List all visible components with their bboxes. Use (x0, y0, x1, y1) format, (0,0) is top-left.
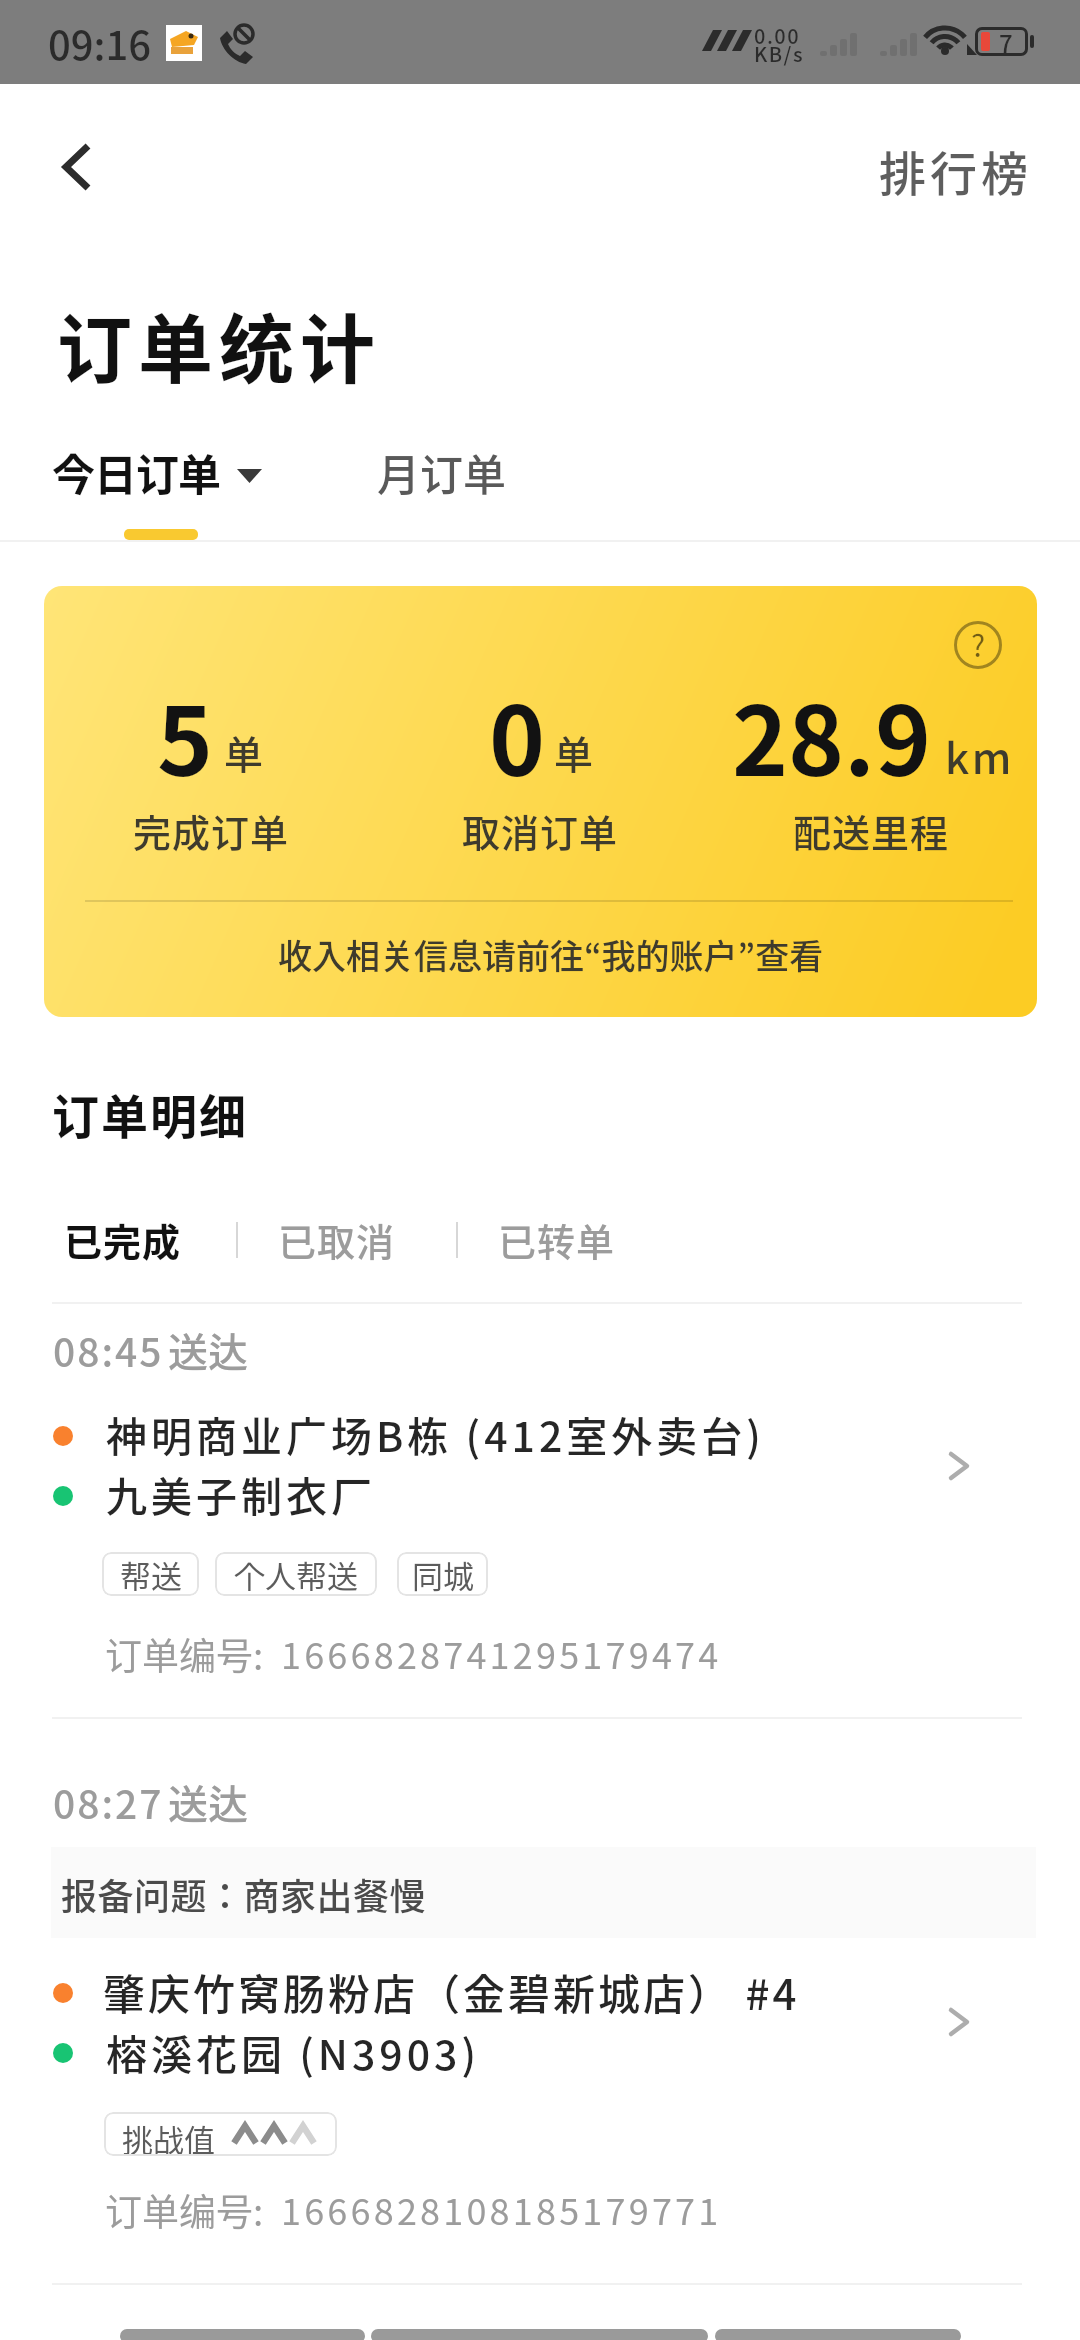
button[interactable]: 月订单 (355, 430, 528, 514)
button[interactable]: 已转单 (476, 1196, 638, 1282)
staticText: 榕溪花园 (N3903) (106, 2022, 480, 2081)
staticText: KB/s (754, 39, 805, 68)
staticText: 收入相关信息请前往“我的账户”查看 (278, 930, 824, 979)
staticText: 排行榜 (879, 136, 1032, 204)
button[interactable] (0, 1303, 1080, 1716)
button[interactable]: 今日订单 (32, 430, 282, 514)
button[interactable]: Back (24, 117, 124, 217)
button[interactable]: 排行榜 (854, 125, 1032, 215)
staticText: 0.00 (754, 21, 801, 50)
staticText: ? (971, 622, 986, 665)
staticText: 今日订单 (52, 441, 220, 503)
staticText: 28.9 (732, 666, 932, 804)
staticText: 肇庆竹窝肠粉店（金碧新城店） #4 (103, 1961, 800, 2022)
staticText: 订单明细 (52, 1079, 248, 1147)
staticText: 神明商业广场B栋 (412室外卖台) (106, 1404, 765, 1463)
staticText: 九美子制衣厂 (106, 1464, 376, 1523)
staticText: 配送里程 (793, 803, 950, 858)
staticText: 报备问题：商家出餐慢 (61, 1868, 427, 1920)
staticText: 送达 (168, 1773, 248, 1831)
button[interactable]: Help (44, 586, 1037, 1017)
staticText: 09:16 (48, 14, 152, 72)
staticText: 08:27 (53, 1774, 164, 1830)
button[interactable] (0, 1718, 1080, 2283)
button[interactable]: 帮送 (102, 1552, 199, 1596)
staticText: 已取消 (278, 1212, 396, 1267)
staticText: 订单编号: (105, 2183, 264, 2237)
staticText: 帮送 (120, 1552, 182, 1596)
staticText: 5 (157, 666, 214, 804)
button[interactable]: 个人帮送 (215, 1552, 377, 1596)
staticText: 1666828108185179771 (281, 2183, 722, 2235)
button[interactable]: 挑战值 (104, 2112, 337, 2156)
staticText: 送达 (168, 1321, 248, 1379)
staticText: 订单统计 (57, 290, 382, 399)
staticText: 已转单 (498, 1212, 616, 1267)
staticText: 单 (224, 724, 265, 780)
staticText: 个人帮送 (234, 1552, 358, 1596)
staticText: 完成订单 (133, 803, 290, 858)
button[interactable]: Help (945, 612, 1011, 678)
staticText: 订单编号: (105, 1627, 264, 1681)
staticText: 0 (489, 666, 546, 804)
staticText: 取消订单 (462, 803, 619, 858)
staticText: 月订单 (377, 441, 506, 503)
staticText: 挑战值 (122, 2116, 215, 2156)
staticText: 08:45 (53, 1322, 164, 1378)
staticText: 7 (999, 25, 1013, 60)
staticText: 1666828741295179474 (281, 1627, 722, 1679)
staticText: km (945, 725, 1014, 786)
button[interactable]: 已完成 (42, 1196, 204, 1282)
staticText: 同城 (412, 1552, 474, 1596)
button[interactable]: 已取消 (256, 1196, 418, 1282)
button[interactable]: 同城 (397, 1552, 488, 1596)
staticText: 单 (554, 724, 595, 780)
staticText: 已完成 (64, 1212, 182, 1267)
